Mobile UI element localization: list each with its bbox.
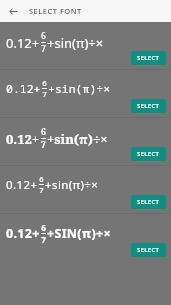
staticText: 7 <box>41 139 46 151</box>
button[interactable]: 0.12+ <box>0 166 171 213</box>
staticText: SELECT <box>137 54 160 62</box>
staticText: +sin(π)÷× <box>47 130 108 148</box>
staticText: SELECT <box>137 102 160 110</box>
staticText: +sin(π)÷× <box>47 34 104 52</box>
button[interactable]: SELECT <box>131 99 166 113</box>
staticText: 0.12+ <box>6 81 41 97</box>
staticText: 7 <box>41 234 46 245</box>
staticText: +sin(π)÷× <box>48 81 111 97</box>
staticText: SELECT <box>137 150 160 158</box>
staticText: 0.12+ <box>6 130 40 148</box>
staticText: 6 <box>41 30 46 42</box>
staticText: +SIN(π)÷× <box>47 225 111 242</box>
button[interactable]: SELECT <box>131 195 166 209</box>
staticText: 6 <box>41 126 46 138</box>
button[interactable]: 0.12+ <box>0 70 171 117</box>
staticText: 6 <box>41 222 46 233</box>
staticText: 7 <box>41 43 46 55</box>
staticText: SELECT FONT <box>29 6 82 16</box>
button[interactable]: Back <box>6 4 20 18</box>
staticText: SELECT <box>137 246 160 254</box>
staticText: +sin(π)÷× <box>45 177 99 193</box>
staticText: 0.12+ <box>6 34 40 52</box>
staticText: 0.12+ <box>6 177 38 193</box>
button[interactable]: 0.12+ <box>0 22 171 69</box>
staticText: 6 <box>39 174 44 184</box>
staticText: 0.12+ <box>6 225 40 242</box>
button[interactable]: 0.12+ <box>0 214 171 261</box>
button[interactable]: 0.12+ <box>0 118 171 165</box>
staticText: SELECT <box>137 198 160 206</box>
button[interactable]: SELECT <box>131 147 166 161</box>
button[interactable]: SELECT <box>131 243 166 257</box>
staticText: 7 <box>42 89 47 99</box>
button[interactable]: SELECT <box>131 51 166 65</box>
staticText: 7 <box>39 185 44 195</box>
staticText: 6 <box>42 78 47 88</box>
